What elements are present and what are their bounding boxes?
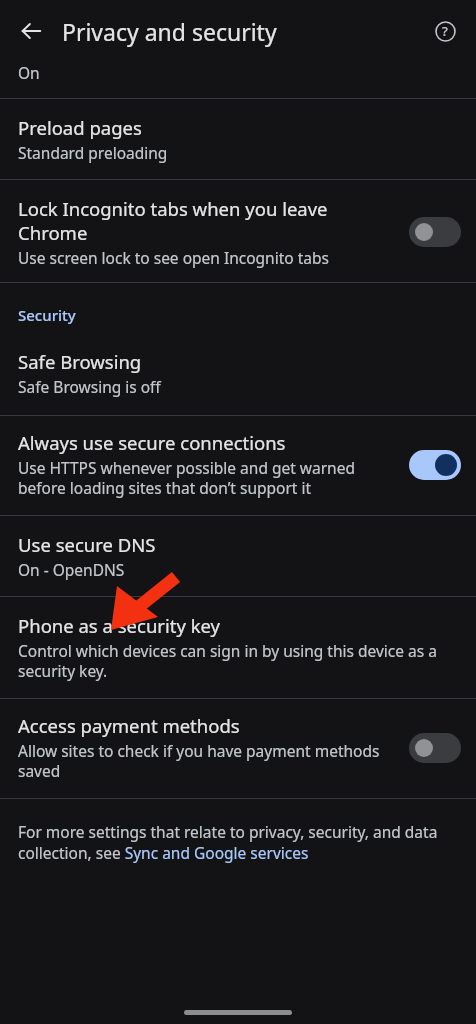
button[interactable]: Always use secure connections [0, 416, 476, 515]
button[interactable]: Use secure DNS [0, 516, 476, 596]
button[interactable]: Always use secure connections [402, 441, 468, 489]
staticText: Preload pages [18, 115, 142, 140]
staticText: Use screen lock to see open Incognito ta… [18, 247, 329, 268]
staticText: For more settings that relate to privacy… [18, 821, 456, 864]
button[interactable]: Preload pages [0, 99, 476, 179]
staticText: Phone as a security key [18, 613, 221, 638]
button[interactable]: Back [8, 8, 54, 54]
staticText: Use HTTPS whenever possible and get warn… [18, 457, 394, 499]
staticText: Use secure DNS [18, 532, 156, 557]
staticText: Control which devices can sign in by usi… [18, 640, 460, 682]
staticText: Safe Browsing [18, 349, 142, 374]
button[interactable]: Lock Incognito tabs [402, 208, 468, 256]
staticText: Safe Browsing is off [18, 376, 161, 397]
button[interactable]: Access payment methods [402, 724, 468, 772]
button[interactable]: Safe Browsing [0, 333, 476, 415]
staticText: Security [18, 305, 76, 325]
button[interactable]: Lock Incognito tabs when you leave Chrom… [0, 180, 476, 282]
staticText: Always use secure connections [18, 430, 286, 455]
staticText: On [18, 62, 40, 83]
staticText: Standard preloading [18, 142, 168, 163]
staticText: Access payment methods [18, 713, 240, 738]
staticText: ? [442, 22, 448, 40]
staticText: Allow sites to check if you have payment… [18, 740, 394, 782]
button[interactable]: Help [422, 8, 468, 54]
staticText: Privacy and security [62, 16, 422, 47]
button[interactable]: Access payment methods [0, 699, 476, 798]
staticText: On - OpenDNS [18, 559, 125, 580]
button[interactable]: Phone as a security key [0, 597, 476, 698]
staticText: Lock Incognito tabs when you leave Chrom… [18, 196, 394, 245]
button[interactable]: For more settings that relate to privacy… [0, 799, 476, 864]
